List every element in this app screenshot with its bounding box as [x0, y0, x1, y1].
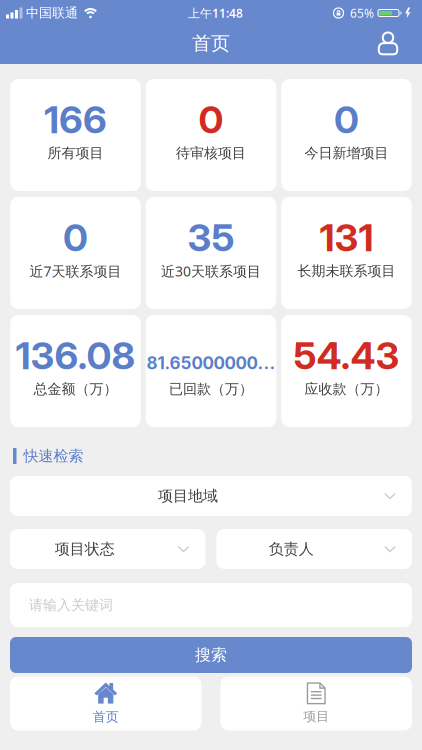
staticText: 快速检索	[23, 447, 83, 465]
staticText: 54.43	[293, 332, 399, 378]
staticText: 35	[187, 214, 234, 260]
button[interactable]: 项目	[220, 676, 412, 730]
staticText: 项目	[303, 708, 329, 725]
staticText: 近30天联系项目	[161, 261, 261, 281]
staticText: 0	[198, 96, 223, 142]
staticText: 首页	[192, 31, 230, 55]
staticText: 已回款（万）	[169, 380, 253, 398]
button[interactable]: 搜索	[10, 637, 412, 673]
staticText: 长期未联系项目	[297, 262, 395, 280]
staticText: 65%	[350, 5, 374, 21]
staticText: 136.08	[15, 332, 135, 378]
staticText: 所有项目	[47, 144, 103, 162]
staticText: 166	[44, 96, 107, 142]
staticText: 项目地域	[158, 487, 218, 505]
staticText: 上午11:48	[188, 5, 243, 21]
staticText: 今日新增项目	[304, 144, 388, 162]
staticText: 总金额（万）	[33, 380, 117, 398]
button[interactable]: 项目地域	[10, 476, 412, 516]
staticText: 请输入关键词	[29, 596, 113, 614]
staticText: 首页	[93, 709, 119, 725]
button[interactable]: 请输入关键词	[10, 583, 412, 627]
button[interactable]: 负责人	[216, 529, 412, 569]
staticText: 负责人	[269, 540, 314, 558]
staticText: 中国联通	[26, 5, 78, 21]
staticText: 搜索	[195, 645, 227, 665]
staticText: 0	[334, 96, 359, 142]
button[interactable]: 用户	[375, 30, 422, 56]
staticText: 81.65000000...	[146, 353, 275, 373]
button[interactable]: 项目状态	[10, 529, 205, 569]
staticText: 应收款（万）	[304, 380, 388, 398]
staticText: 0	[63, 214, 88, 260]
staticText: 项目状态	[55, 540, 115, 558]
staticText: 待审核项目	[176, 144, 246, 162]
button[interactable]: 首页	[10, 676, 201, 730]
staticText: 近7天联系项目	[29, 261, 121, 281]
staticText: 131	[319, 214, 373, 260]
